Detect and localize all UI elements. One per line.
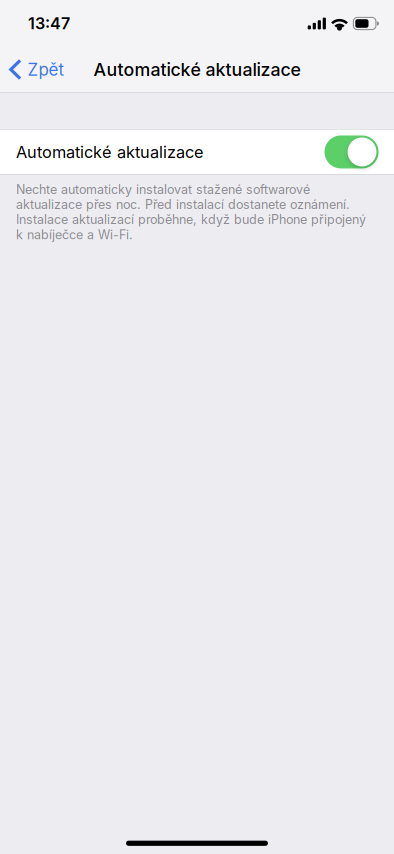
staticText: Automatické aktualizace [16,142,204,162]
button[interactable]: Zpět [0,47,75,91]
staticText: 13:47 [28,14,70,33]
staticText: Nechte automaticky instalovat stažené so… [16,182,366,242]
staticText: Automatické aktualizace [93,59,300,80]
staticText: Zpět [28,59,65,80]
button[interactable]: Automatické aktualizace [0,130,394,174]
